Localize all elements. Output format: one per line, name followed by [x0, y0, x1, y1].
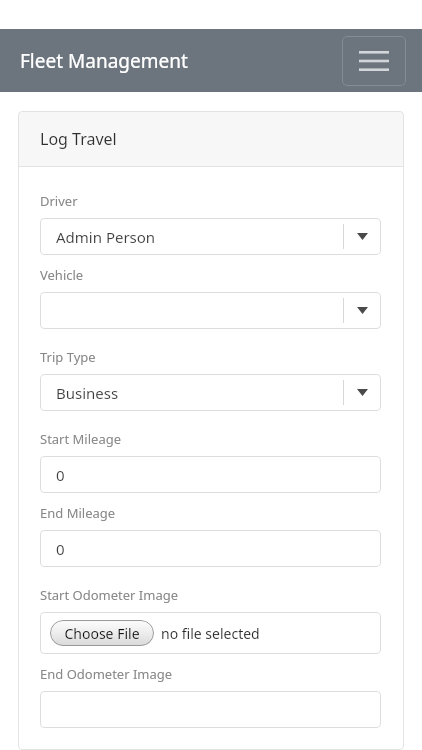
staticText: Trip Type	[40, 348, 96, 366]
staticText: Business	[56, 383, 119, 403]
button[interactable]	[40, 691, 381, 728]
button[interactable]: Admin Person	[40, 218, 381, 255]
button[interactable]: 0	[40, 530, 381, 567]
staticText: 0	[56, 539, 65, 559]
staticText: Choose File	[64, 624, 140, 643]
staticText: Driver	[40, 192, 78, 210]
staticText: Log Travel	[40, 128, 117, 150]
staticText: 0	[56, 465, 65, 485]
staticText: Start Odometer Image	[40, 586, 179, 604]
staticText: Admin Person	[56, 227, 156, 247]
button[interactable]: Open navigation menu	[342, 36, 406, 86]
staticText: End Odometer Image	[40, 665, 173, 683]
button[interactable]: Choose File	[40, 612, 381, 654]
button[interactable]: Business	[40, 374, 381, 411]
staticText: Vehicle	[40, 266, 84, 284]
button[interactable]: 0	[40, 456, 381, 493]
staticText: no file selected	[161, 624, 260, 643]
staticText: Fleet Management	[20, 48, 188, 74]
button[interactable]	[40, 292, 381, 329]
staticText: Start Mileage	[40, 430, 122, 448]
staticText: End Mileage	[40, 504, 116, 522]
